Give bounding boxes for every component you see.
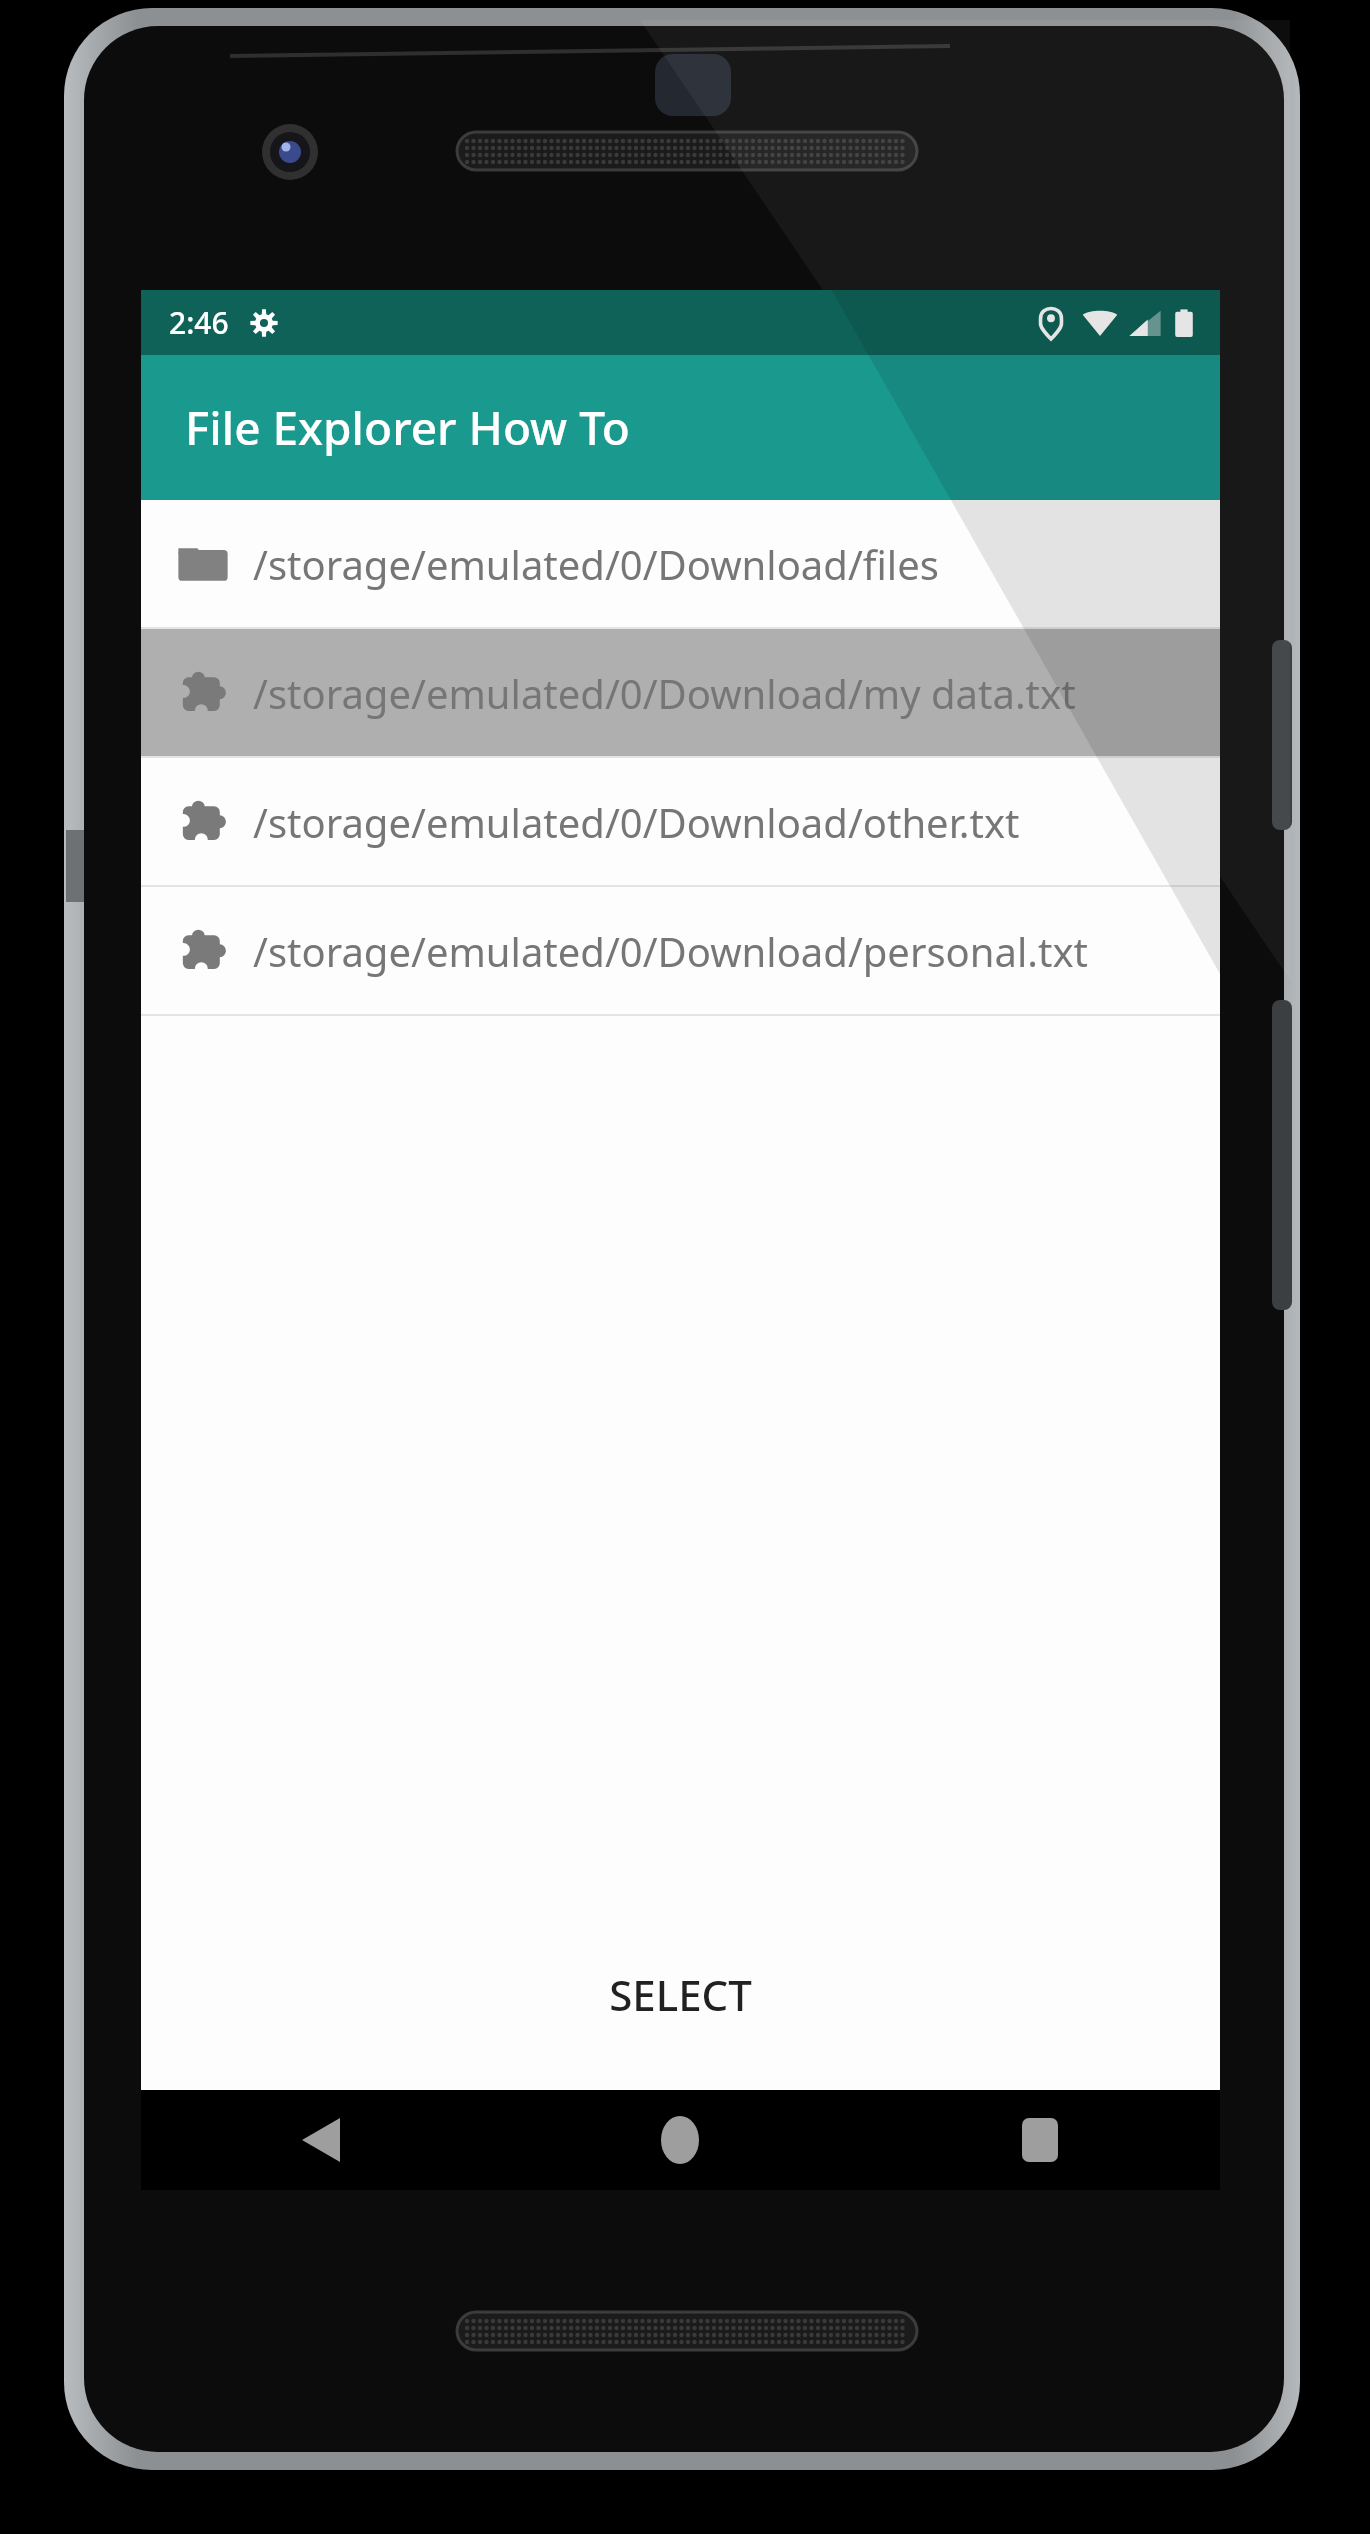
staticText: SELECT [609,1966,752,2023]
staticText: File Explorer How To [185,396,630,459]
button[interactable]: /storage/emulated/0/Download/personal.tx… [141,887,1220,1014]
button[interactable]: /storage/emulated/0/Download/files [141,500,1220,627]
button[interactable]: Home [500,2090,860,2190]
staticText: /storage/emulated/0/Download/my data.txt [253,666,1076,720]
staticText: /storage/emulated/0/Download/files [253,537,939,591]
button[interactable]: Back [141,2090,500,2190]
button[interactable]: /storage/emulated/0/Download/my data.txt [141,629,1220,756]
staticText: 2:46 [169,302,229,343]
staticText: /storage/emulated/0/Download/personal.tx… [253,924,1089,978]
button[interactable]: Recent apps [860,2090,1220,2190]
button[interactable]: SELECT [141,1934,1220,2054]
button[interactable]: /storage/emulated/0/Download/other.txt [141,758,1220,885]
staticText: /storage/emulated/0/Download/other.txt [253,795,1020,849]
